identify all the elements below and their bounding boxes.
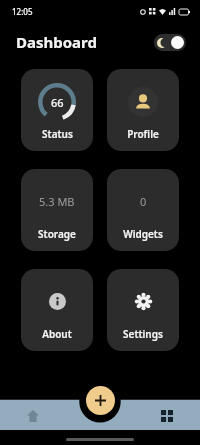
staticText: Dashboard: [16, 32, 97, 52]
staticText: 12:05: [12, 6, 33, 17]
button[interactable]: Home: [22, 405, 44, 427]
button[interactable]: About: [21, 269, 93, 351]
button[interactable]: 0: [107, 169, 179, 251]
button[interactable]: 66: [21, 69, 93, 151]
button[interactable]: Profile: [107, 69, 179, 151]
button[interactable]: Settings: [107, 269, 179, 351]
button[interactable]: Widgets: [156, 405, 178, 427]
button[interactable]: Toggle dark mode: [154, 34, 186, 51]
staticText: 0: [140, 194, 147, 209]
staticText: 66: [51, 95, 64, 110]
staticText: Storage: [38, 227, 76, 241]
button[interactable]: Add: [86, 386, 115, 415]
staticText: Profile: [127, 127, 159, 141]
staticText: About: [42, 327, 72, 341]
staticText: Widgets: [123, 227, 163, 241]
staticText: Status: [42, 127, 73, 141]
staticText: Settings: [123, 327, 163, 341]
button[interactable]: 5.3 MB: [21, 169, 93, 251]
staticText: 5.3 MB: [39, 194, 75, 209]
